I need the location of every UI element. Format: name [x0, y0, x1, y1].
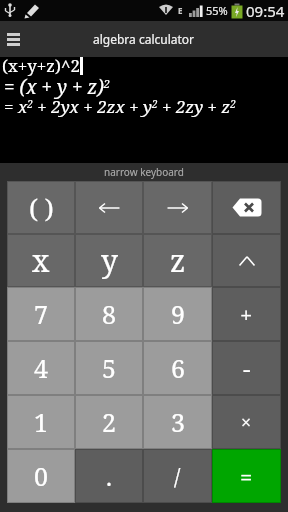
- staticText: 0: [34, 459, 48, 493]
- staticText: 8: [102, 297, 116, 331]
- staticText: 4: [34, 351, 48, 385]
- button[interactable]: /: [143, 449, 212, 503]
- button[interactable]: 2: [75, 395, 143, 449]
- staticText: =: [240, 461, 253, 491]
- staticText: = x2 + 2yx + 2zx + y2 + 2zy + z2: [4, 95, 236, 118]
- staticText: 09:54: [246, 1, 285, 21]
- button[interactable]: ( ): [7, 181, 75, 234]
- button[interactable]: +: [212, 287, 281, 341]
- button[interactable]: ×: [212, 395, 281, 449]
- button[interactable]: 0: [7, 449, 75, 503]
- staticText: 55%: [206, 3, 228, 18]
- staticText: narrow keyboard: [104, 165, 184, 179]
- staticText: 9: [171, 297, 185, 331]
- button[interactable]: 4: [7, 341, 75, 395]
- button[interactable]: [212, 181, 281, 234]
- button[interactable]: x: [7, 234, 75, 287]
- staticText: /: [174, 461, 181, 491]
- button[interactable]: 3: [143, 395, 212, 449]
- staticText: x: [32, 240, 50, 281]
- staticText: ( ): [29, 190, 54, 225]
- staticText: 7: [34, 297, 48, 331]
- button[interactable]: 8: [75, 287, 143, 341]
- button[interactable]: .: [75, 449, 143, 503]
- button[interactable]: 7: [7, 287, 75, 341]
- button[interactable]: 5: [75, 341, 143, 395]
- staticText: z: [170, 240, 186, 281]
- staticText: 5: [102, 351, 116, 385]
- staticText: y: [101, 240, 118, 281]
- button[interactable]: 1: [7, 395, 75, 449]
- staticText: E: [178, 5, 183, 16]
- button[interactable]: [143, 181, 212, 234]
- button[interactable]: [7, 33, 20, 46]
- staticText: 6: [171, 351, 185, 385]
- staticText: 2: [102, 405, 116, 439]
- staticText: 1: [34, 405, 48, 439]
- button[interactable]: y: [75, 234, 143, 287]
- button[interactable]: =: [212, 449, 281, 503]
- staticText: algebra calculator: [93, 31, 195, 47]
- staticText: (x+y+z)^2: [2, 54, 80, 77]
- staticText: 3: [171, 405, 185, 439]
- button[interactable]: z: [143, 234, 212, 287]
- button[interactable]: -: [212, 341, 281, 395]
- staticText: -: [243, 352, 251, 385]
- staticText: +: [240, 299, 253, 329]
- staticText: ×: [241, 410, 252, 435]
- staticText: .: [106, 460, 112, 493]
- button[interactable]: 9: [143, 287, 212, 341]
- button[interactable]: [75, 181, 143, 234]
- button[interactable]: 6: [143, 341, 212, 395]
- button[interactable]: [212, 234, 281, 287]
- button[interactable]: (x+y+z)^2: [2, 54, 83, 77]
- staticText: = (x + y + z)2: [4, 74, 110, 100]
